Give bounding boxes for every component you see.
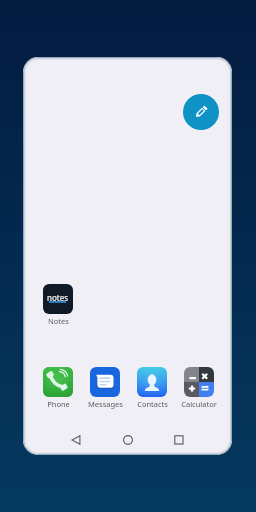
button[interactable]: Calculator — [176, 367, 222, 409]
button[interactable]: Home — [117, 429, 139, 451]
staticText: Notes — [48, 316, 69, 326]
staticText: notes — [47, 292, 69, 303]
staticText: Phone — [47, 399, 70, 409]
button[interactable]: Phone — [35, 367, 81, 409]
button[interactable]: notes — [35, 284, 81, 326]
button[interactable]: Recent apps — [168, 429, 190, 451]
button[interactable]: Back — [65, 429, 87, 451]
button[interactable]: New note — [183, 94, 219, 130]
staticText: Messages — [88, 399, 123, 409]
button[interactable]: Contacts — [129, 367, 175, 409]
staticText: Contacts — [137, 399, 168, 409]
staticText: Calculator — [181, 399, 217, 409]
button[interactable]: Messages — [82, 367, 128, 409]
